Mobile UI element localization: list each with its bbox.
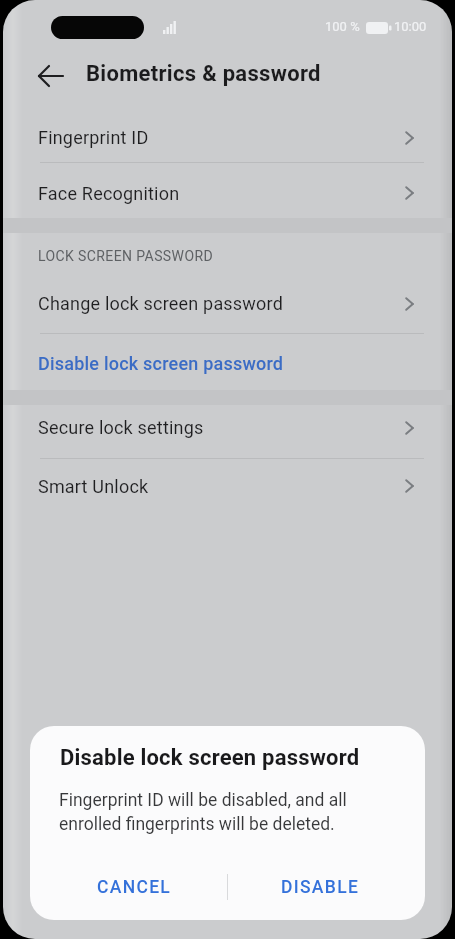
staticText: LOCK SCREEN PASSWORD bbox=[38, 248, 214, 264]
button[interactable] bbox=[25, 56, 77, 96]
button[interactable]: Smart Unlock bbox=[3, 457, 452, 515]
staticText: CANCEL bbox=[97, 877, 172, 898]
staticText: 100 % bbox=[325, 19, 360, 34]
staticText: Smart Unlock bbox=[38, 476, 149, 497]
button[interactable]: Disable lock screen password bbox=[3, 335, 452, 391]
staticText: Disable lock screen password bbox=[38, 353, 284, 374]
staticText: Secure lock settings bbox=[38, 417, 204, 438]
button[interactable]: Secure lock settings bbox=[3, 402, 452, 453]
button[interactable]: DISABLE bbox=[228, 865, 413, 909]
staticText: Face Recognition bbox=[38, 183, 180, 204]
staticText: Fingerprint ID will be disabled, and all… bbox=[59, 790, 347, 834]
staticText: Fingerprint ID bbox=[38, 127, 149, 148]
staticText: DISABLE bbox=[281, 877, 360, 898]
staticText: 10:00 bbox=[394, 19, 427, 34]
button[interactable]: CANCEL bbox=[42, 865, 227, 909]
button[interactable]: Change lock screen password bbox=[3, 278, 452, 329]
staticText: Disable lock screen password bbox=[60, 745, 360, 771]
staticText: Biometrics & password bbox=[86, 61, 321, 87]
button[interactable]: Fingerprint ID bbox=[3, 111, 452, 164]
staticText: Change lock screen password bbox=[38, 293, 284, 314]
button[interactable]: Face Recognition bbox=[3, 164, 452, 222]
